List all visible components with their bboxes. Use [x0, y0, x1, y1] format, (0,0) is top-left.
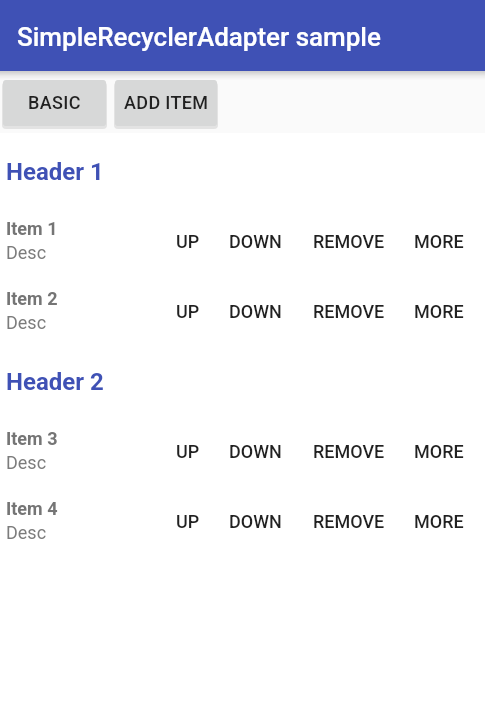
- staticText: DOWN: [229, 441, 282, 462]
- button[interactable]: REMOVE: [305, 291, 393, 332]
- staticText: REMOVE: [313, 231, 385, 252]
- staticText: UP: [176, 441, 200, 462]
- button[interactable]: Item 2: [0, 273, 485, 343]
- button[interactable]: BASIC: [3, 80, 106, 126]
- button[interactable]: MORE: [406, 291, 472, 332]
- button[interactable]: ADD ITEM: [115, 80, 217, 126]
- staticText: Desc: [6, 452, 47, 473]
- staticText: Desc: [6, 522, 47, 543]
- staticText: DOWN: [229, 511, 282, 532]
- button[interactable]: UP: [168, 221, 208, 262]
- button[interactable]: Item 4: [0, 483, 485, 553]
- button[interactable]: DOWN: [221, 221, 290, 262]
- button[interactable]: MORE: [406, 221, 472, 262]
- staticText: MORE: [414, 441, 464, 462]
- staticText: UP: [176, 511, 200, 532]
- staticText: REMOVE: [313, 441, 385, 462]
- staticText: Desc: [6, 312, 47, 333]
- button[interactable]: UP: [168, 291, 208, 332]
- staticText: Item 2: [6, 288, 58, 309]
- staticText: SimpleRecyclerAdapter sample: [17, 22, 381, 52]
- staticText: DOWN: [229, 231, 282, 252]
- staticText: Item 1: [6, 218, 58, 239]
- button[interactable]: REMOVE: [305, 221, 393, 262]
- staticText: BASIC: [28, 92, 81, 113]
- button[interactable]: REMOVE: [305, 501, 393, 542]
- button[interactable]: DOWN: [221, 291, 290, 332]
- button[interactable]: UP: [168, 501, 208, 542]
- staticText: MORE: [414, 231, 464, 252]
- button[interactable]: Item 3: [0, 413, 485, 483]
- button[interactable]: DOWN: [221, 501, 290, 542]
- button[interactable]: Item 1: [0, 203, 485, 273]
- button[interactable]: MORE: [406, 501, 472, 542]
- staticText: Item 3: [6, 428, 58, 449]
- staticText: UP: [176, 301, 200, 322]
- staticText: Desc: [6, 242, 47, 263]
- staticText: Item 4: [6, 498, 58, 519]
- staticText: DOWN: [229, 301, 282, 322]
- button[interactable]: DOWN: [221, 431, 290, 472]
- staticText: MORE: [414, 301, 464, 322]
- button[interactable]: MORE: [406, 431, 472, 472]
- staticText: ADD ITEM: [124, 92, 209, 113]
- staticText: UP: [176, 231, 200, 252]
- staticText: REMOVE: [313, 301, 385, 322]
- button[interactable]: REMOVE: [305, 431, 393, 472]
- button[interactable]: UP: [168, 431, 208, 472]
- staticText: MORE: [414, 511, 464, 532]
- staticText: Header 1: [6, 158, 104, 186]
- staticText: Header 2: [6, 368, 104, 396]
- staticText: REMOVE: [313, 511, 385, 532]
